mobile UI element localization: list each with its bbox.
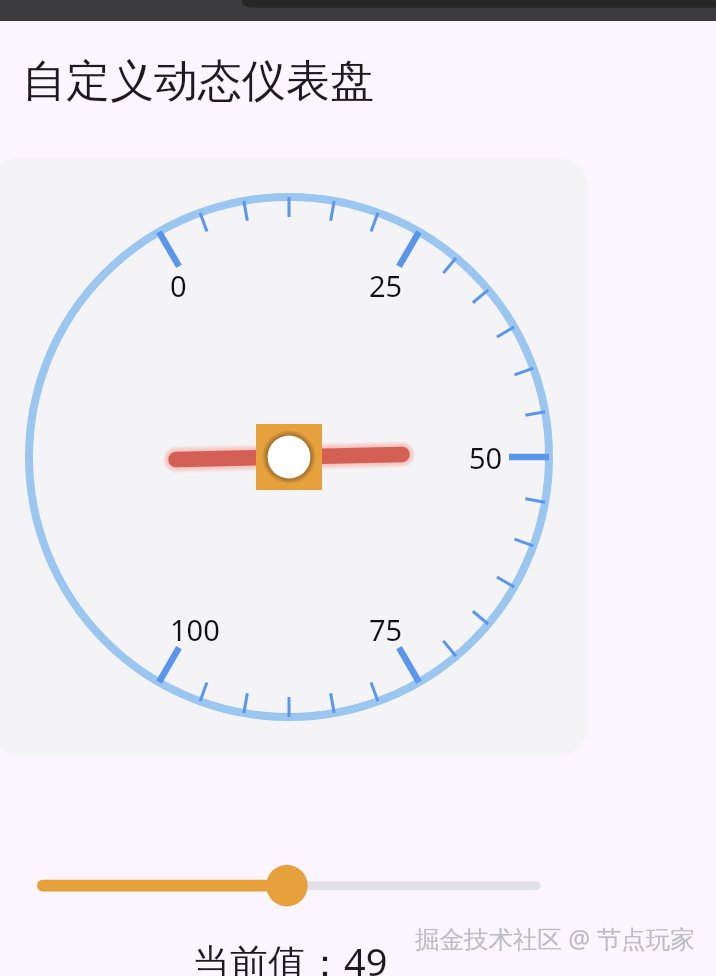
staticText: 75 [369, 610, 403, 649]
button[interactable]: Gauge value slider [20, 860, 560, 912]
staticText: 50 [469, 438, 503, 477]
staticText: 100 [170, 610, 220, 649]
staticText: 掘金技术社区 @ 节点玩家 [415, 922, 695, 955]
staticText: 25 [369, 266, 403, 305]
button[interactable]: Gauge dial [0, 158, 588, 756]
staticText: 0 [170, 266, 187, 305]
staticText: 当前值：49 [192, 935, 388, 976]
staticText: 自定义动态仪表盘 [22, 54, 374, 109]
